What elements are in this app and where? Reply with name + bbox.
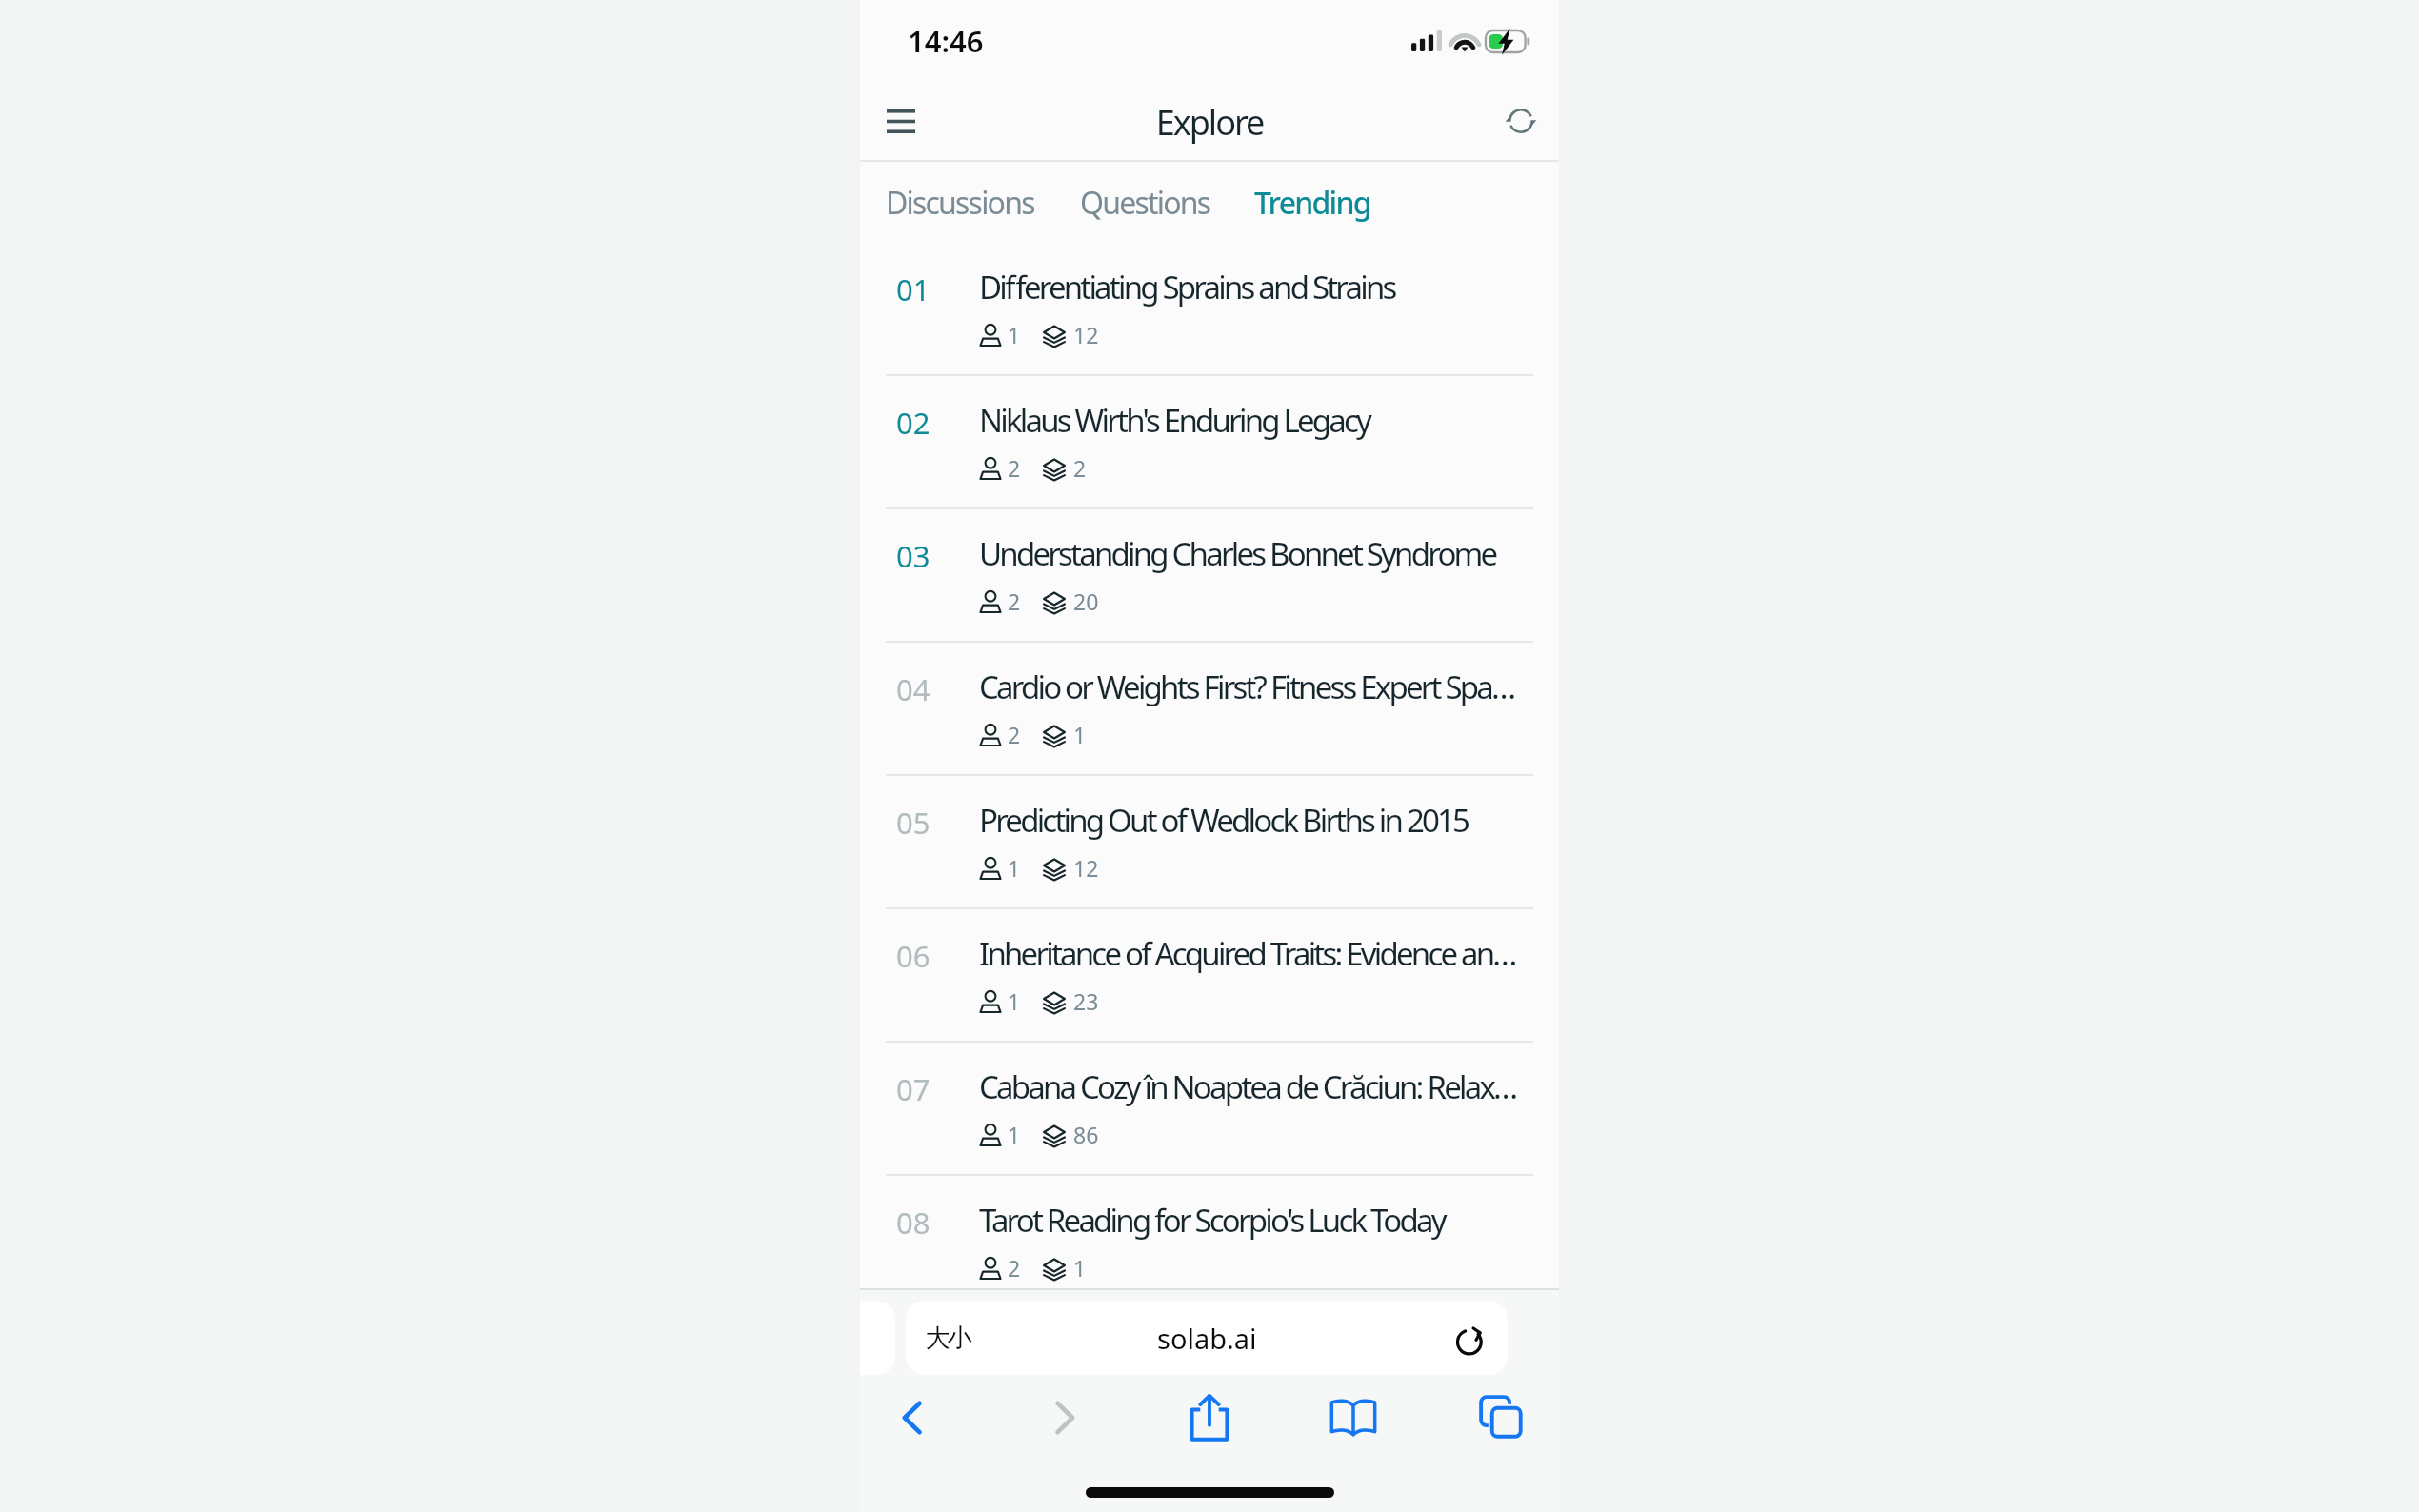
staticText: 12 [1073,320,1099,349]
staticText: 23 [1073,986,1099,1016]
staticText: 04 [896,669,930,709]
staticText: 2 [1008,587,1021,616]
staticText: 12 [1073,853,1099,883]
button[interactable]: 03 [860,508,1559,642]
button[interactable]: 08 [860,1175,1559,1308]
button[interactable]: Back [888,1392,939,1443]
staticText: solab.ai [1157,1320,1257,1357]
staticText: 1 [1008,853,1021,883]
button[interactable]: Reload [1452,1320,1489,1356]
staticText: 02 [896,403,930,443]
staticText: 2 [1073,453,1087,483]
button[interactable]: Questions [1069,176,1222,229]
staticText: Understanding Charles Bonnet Syndrome [979,532,1529,575]
button[interactable]: Menu [868,90,934,152]
button[interactable]: Share [1184,1391,1235,1442]
button[interactable]: Forward [1038,1392,1090,1443]
staticText: 1 [1073,1253,1087,1283]
staticText: 1 [1008,1120,1021,1149]
button[interactable]: 07 [860,1042,1559,1175]
staticText: 2 [1008,720,1021,749]
staticText: 20 [1073,587,1099,616]
staticText: 05 [896,803,930,843]
staticText: 大小 [927,1323,970,1354]
staticText: 2 [1008,453,1021,483]
staticText: Questions [1080,182,1210,224]
staticText: Cabana Cozy în Noaptea de Crăciun: Relax… [979,1065,1529,1108]
staticText: Niklaus Wirth's Enduring Legacy [979,399,1529,442]
button[interactable]: 大小 [906,1301,984,1375]
staticText: Inheritance of Acquired Traits: Evidence… [979,932,1529,975]
button[interactable]: Refresh [1489,90,1552,152]
staticText: Predicting Out of Wedlock Births in 2015 [979,799,1529,842]
staticText: 08 [896,1203,930,1243]
button[interactable]: Discussions [874,176,1046,229]
staticText: Cardio or Weights First? Fitness Expert … [979,666,1529,708]
button[interactable]: 04 [860,642,1559,775]
button[interactable]: 02 [860,375,1559,508]
staticText: 86 [1073,1120,1099,1149]
staticText: 03 [896,536,930,576]
staticText: 06 [896,936,930,976]
button[interactable]: 05 [860,775,1559,908]
staticText: 14:46 [908,21,984,61]
staticText: Discussions [886,182,1034,224]
staticText: 07 [896,1069,930,1109]
staticText: Differentiating Sprains and Strains [979,266,1529,308]
staticText: 1 [1008,320,1021,349]
button[interactable]: 06 [860,908,1559,1042]
staticText: Trending [1254,182,1370,224]
button[interactable]: 大小 [906,1301,1508,1375]
staticText: 2 [1008,1253,1021,1283]
button[interactable]: Trending [1243,176,1382,229]
button[interactable]: Bookmarks [1328,1391,1379,1442]
staticText: Explore [860,99,1559,146]
staticText: 01 [896,269,930,309]
button[interactable]: Tabs [1476,1392,1528,1443]
button[interactable]: 01 [860,242,1559,375]
staticText: 1 [1073,720,1087,749]
staticText: 1 [1008,986,1021,1016]
staticText: Tarot Reading for Scorpio's Luck Today [979,1199,1529,1242]
